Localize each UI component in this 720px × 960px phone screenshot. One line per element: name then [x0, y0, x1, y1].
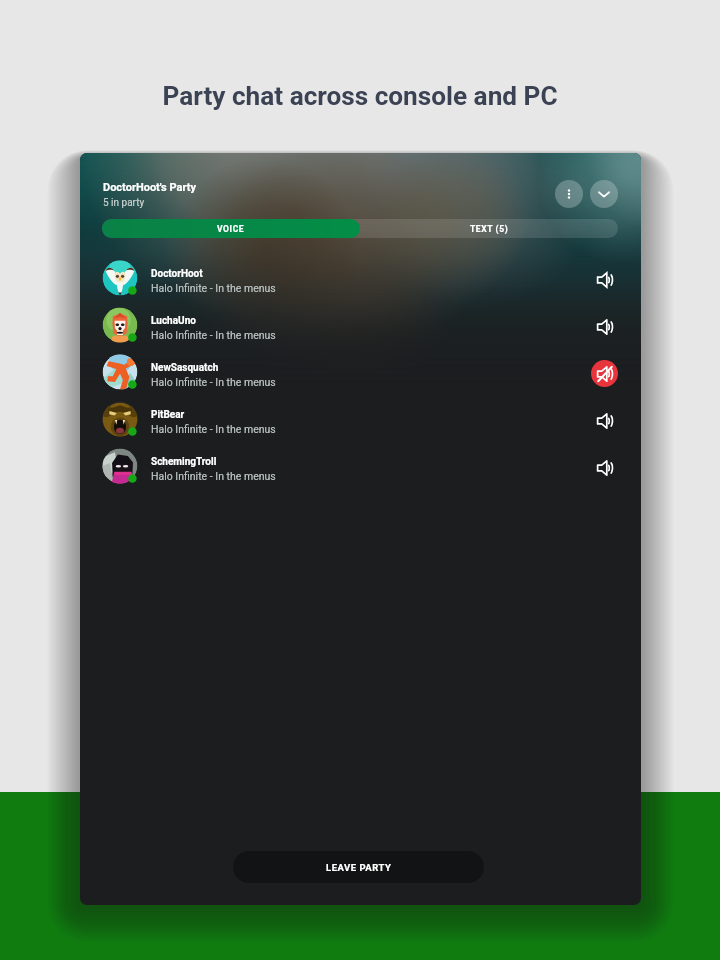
staticText: Halo Infinite - In the menus: [151, 282, 276, 294]
button[interactable]: PitBear: [80, 395, 641, 442]
button[interactable]: Mute: [591, 313, 618, 340]
button[interactable]: LEAVE PARTY: [233, 851, 484, 883]
staticText: 5 in party: [103, 197, 145, 209]
staticText: Halo Infinite - In the menus: [151, 470, 276, 482]
staticText: VOICE: [217, 224, 245, 234]
staticText: NewSasquatch: [151, 362, 219, 374]
staticText: SchemingTroll: [151, 456, 217, 468]
button[interactable]: NewSasquatch: [80, 348, 641, 395]
staticText: Party chat across console and PC: [0, 81, 720, 112]
button[interactable]: Collapse party: [590, 180, 618, 208]
staticText: DoctorHoot: [151, 268, 203, 280]
button[interactable]: Mute: [591, 407, 618, 434]
staticText: LuchaUno: [151, 315, 196, 327]
staticText: LEAVE PARTY: [326, 862, 392, 873]
staticText: TEXT (5): [470, 224, 509, 234]
button[interactable]: More options: [555, 180, 583, 208]
button[interactable]: Mute: [591, 454, 618, 481]
staticText: Halo Infinite - In the menus: [151, 329, 276, 341]
button[interactable]: LuchaUno: [80, 301, 641, 348]
button[interactable]: DoctorHoot: [80, 254, 641, 301]
button[interactable]: Unmute: [591, 360, 618, 387]
button[interactable]: Mute: [591, 266, 618, 293]
button[interactable]: VOICE: [102, 219, 360, 238]
button[interactable]: SchemingTroll: [80, 442, 641, 489]
button[interactable]: TEXT (5): [360, 219, 618, 238]
staticText: Halo Infinite - In the menus: [151, 423, 276, 435]
staticText: Halo Infinite - In the menus: [151, 376, 276, 388]
staticText: DoctorHoot's Party: [103, 181, 196, 194]
staticText: PitBear: [151, 409, 185, 421]
